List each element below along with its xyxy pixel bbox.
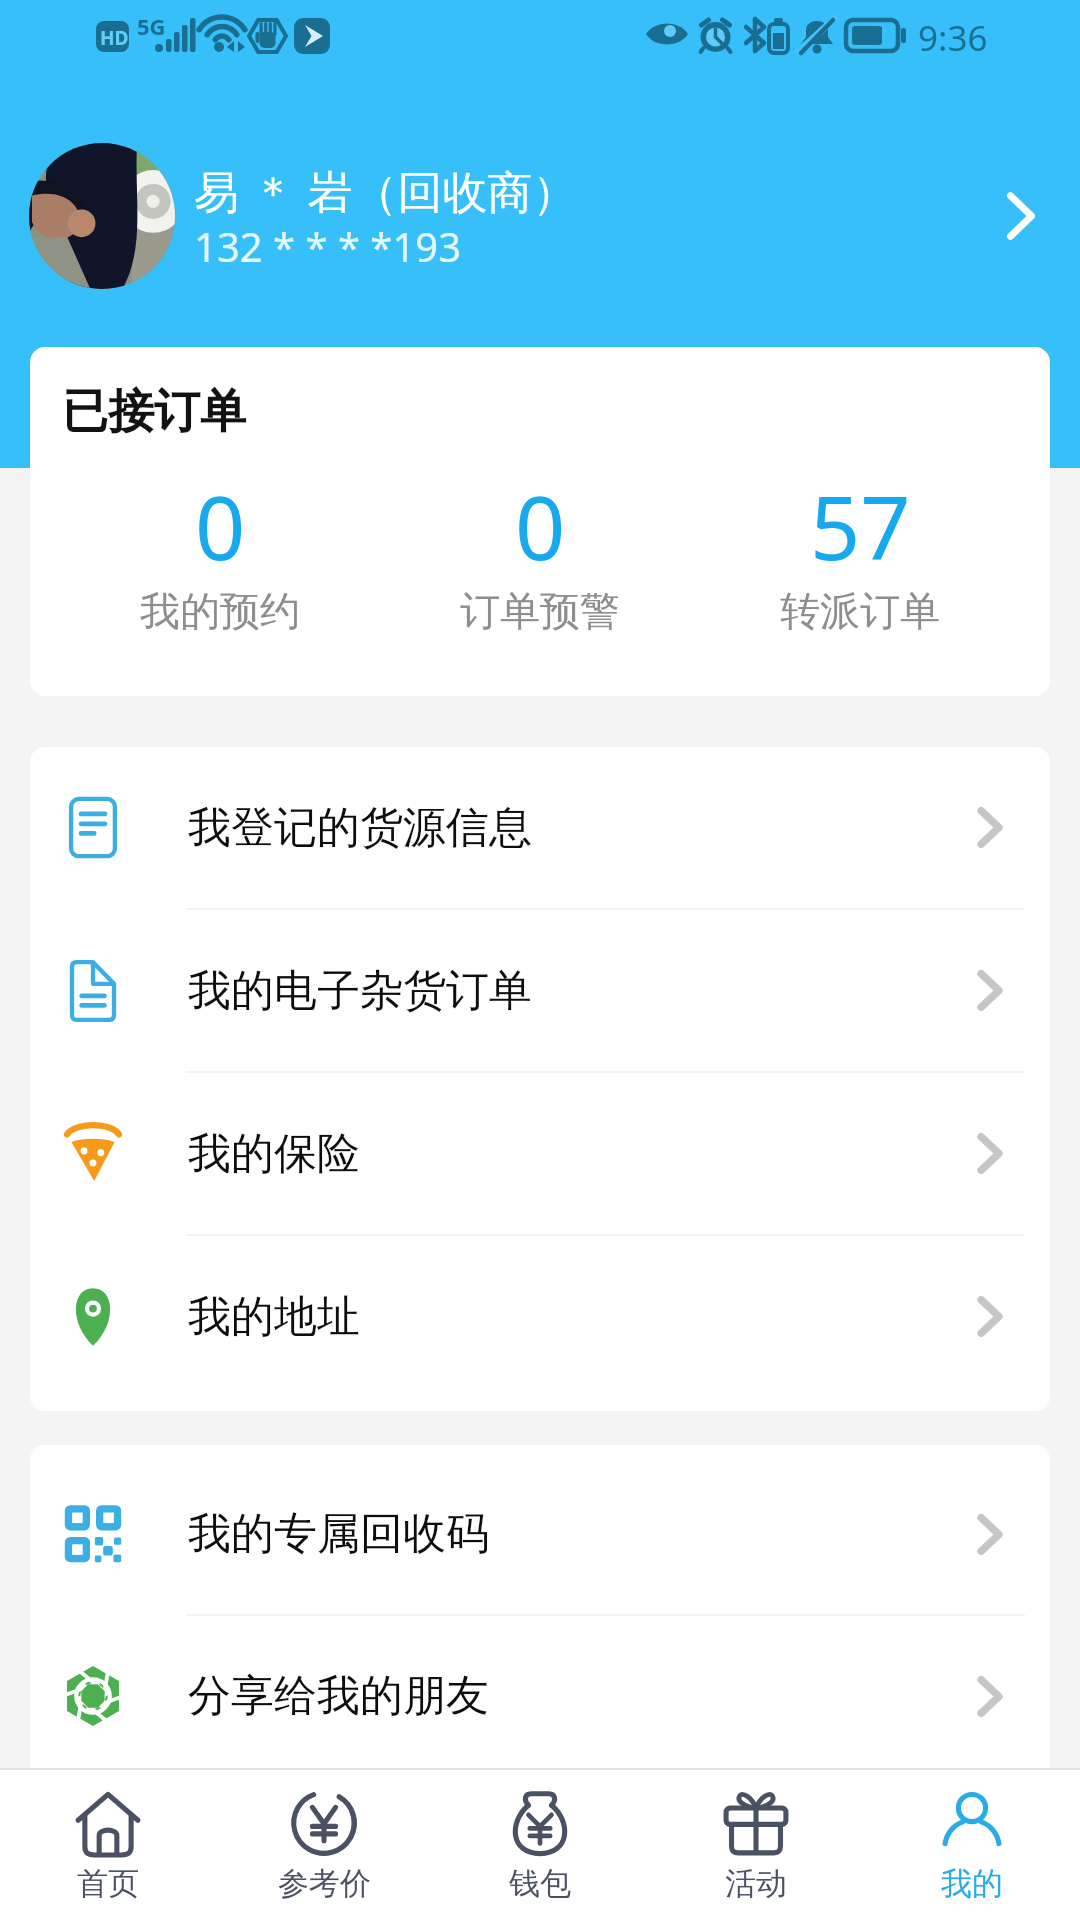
staticText: 我登记的货源信息 xyxy=(188,801,532,855)
other: Profile details xyxy=(1006,193,1036,239)
button[interactable]: 参考价 xyxy=(216,1770,432,1903)
button[interactable]: 我的 xyxy=(864,1770,1080,1903)
staticText: 132 * * * *193 xyxy=(194,219,462,273)
button[interactable]: 我的电子杂货订单 xyxy=(30,910,1050,1073)
button[interactable]: 57 xyxy=(700,466,1020,636)
staticText: 5G xyxy=(137,11,166,41)
staticText: 我的 xyxy=(941,1864,1003,1903)
button[interactable]: 我的地址 xyxy=(30,1236,1050,1397)
button[interactable]: 易 ＊ 岩（回收商） xyxy=(0,0,1080,330)
staticText: 活动 xyxy=(725,1864,787,1903)
button[interactable]: 我的保险 xyxy=(30,1073,1050,1236)
staticText: 已接订单 xyxy=(62,383,246,441)
staticText: 我的专属回收码 xyxy=(188,1507,489,1561)
staticText: 0 xyxy=(195,466,246,586)
button[interactable]: 活动 xyxy=(648,1770,864,1903)
button[interactable]: 分享给我的朋友 xyxy=(30,1616,1050,1776)
staticText: 我的保险 xyxy=(188,1127,360,1181)
staticText: 参考价 xyxy=(278,1864,371,1903)
staticText: 钱包 xyxy=(509,1864,571,1903)
staticText: 9:36 xyxy=(918,14,988,62)
staticText: 57 xyxy=(810,466,911,586)
staticText: 转派订单 xyxy=(780,586,940,636)
button[interactable]: 0 xyxy=(380,466,700,636)
button[interactable]: 0 xyxy=(60,466,380,636)
staticText: 易 ＊ 岩（回收商） xyxy=(194,160,578,221)
button[interactable]: 首页 xyxy=(0,1770,216,1903)
staticText: 我的地址 xyxy=(188,1290,360,1344)
staticText: 我的电子杂货订单 xyxy=(188,964,532,1018)
button[interactable]: 钱包 xyxy=(432,1770,648,1903)
staticText: 分享给我的朋友 xyxy=(188,1669,489,1723)
staticText: 我的预约 xyxy=(140,586,300,636)
staticText: 订单预警 xyxy=(460,586,620,636)
staticText: 首页 xyxy=(77,1864,139,1903)
staticText: HD xyxy=(100,25,129,51)
staticText: 0 xyxy=(515,466,566,586)
button[interactable]: 我的专属回收码 xyxy=(30,1454,1050,1616)
button[interactable]: 我登记的货源信息 xyxy=(30,747,1050,910)
